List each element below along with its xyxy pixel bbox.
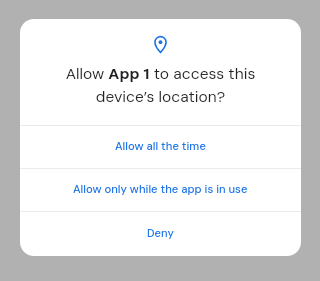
staticText: Allow App 1 to access this device’s loca… (20, 64, 301, 107)
button[interactable]: Deny (20, 212, 301, 256)
staticText: Allow all the time (115, 139, 206, 154)
button[interactable]: Allow only while the app is in use (20, 169, 301, 211)
staticText: Deny (147, 226, 174, 241)
button[interactable]: Allow all the time (20, 126, 301, 168)
staticText: Allow only while the app is in use (73, 182, 248, 197)
